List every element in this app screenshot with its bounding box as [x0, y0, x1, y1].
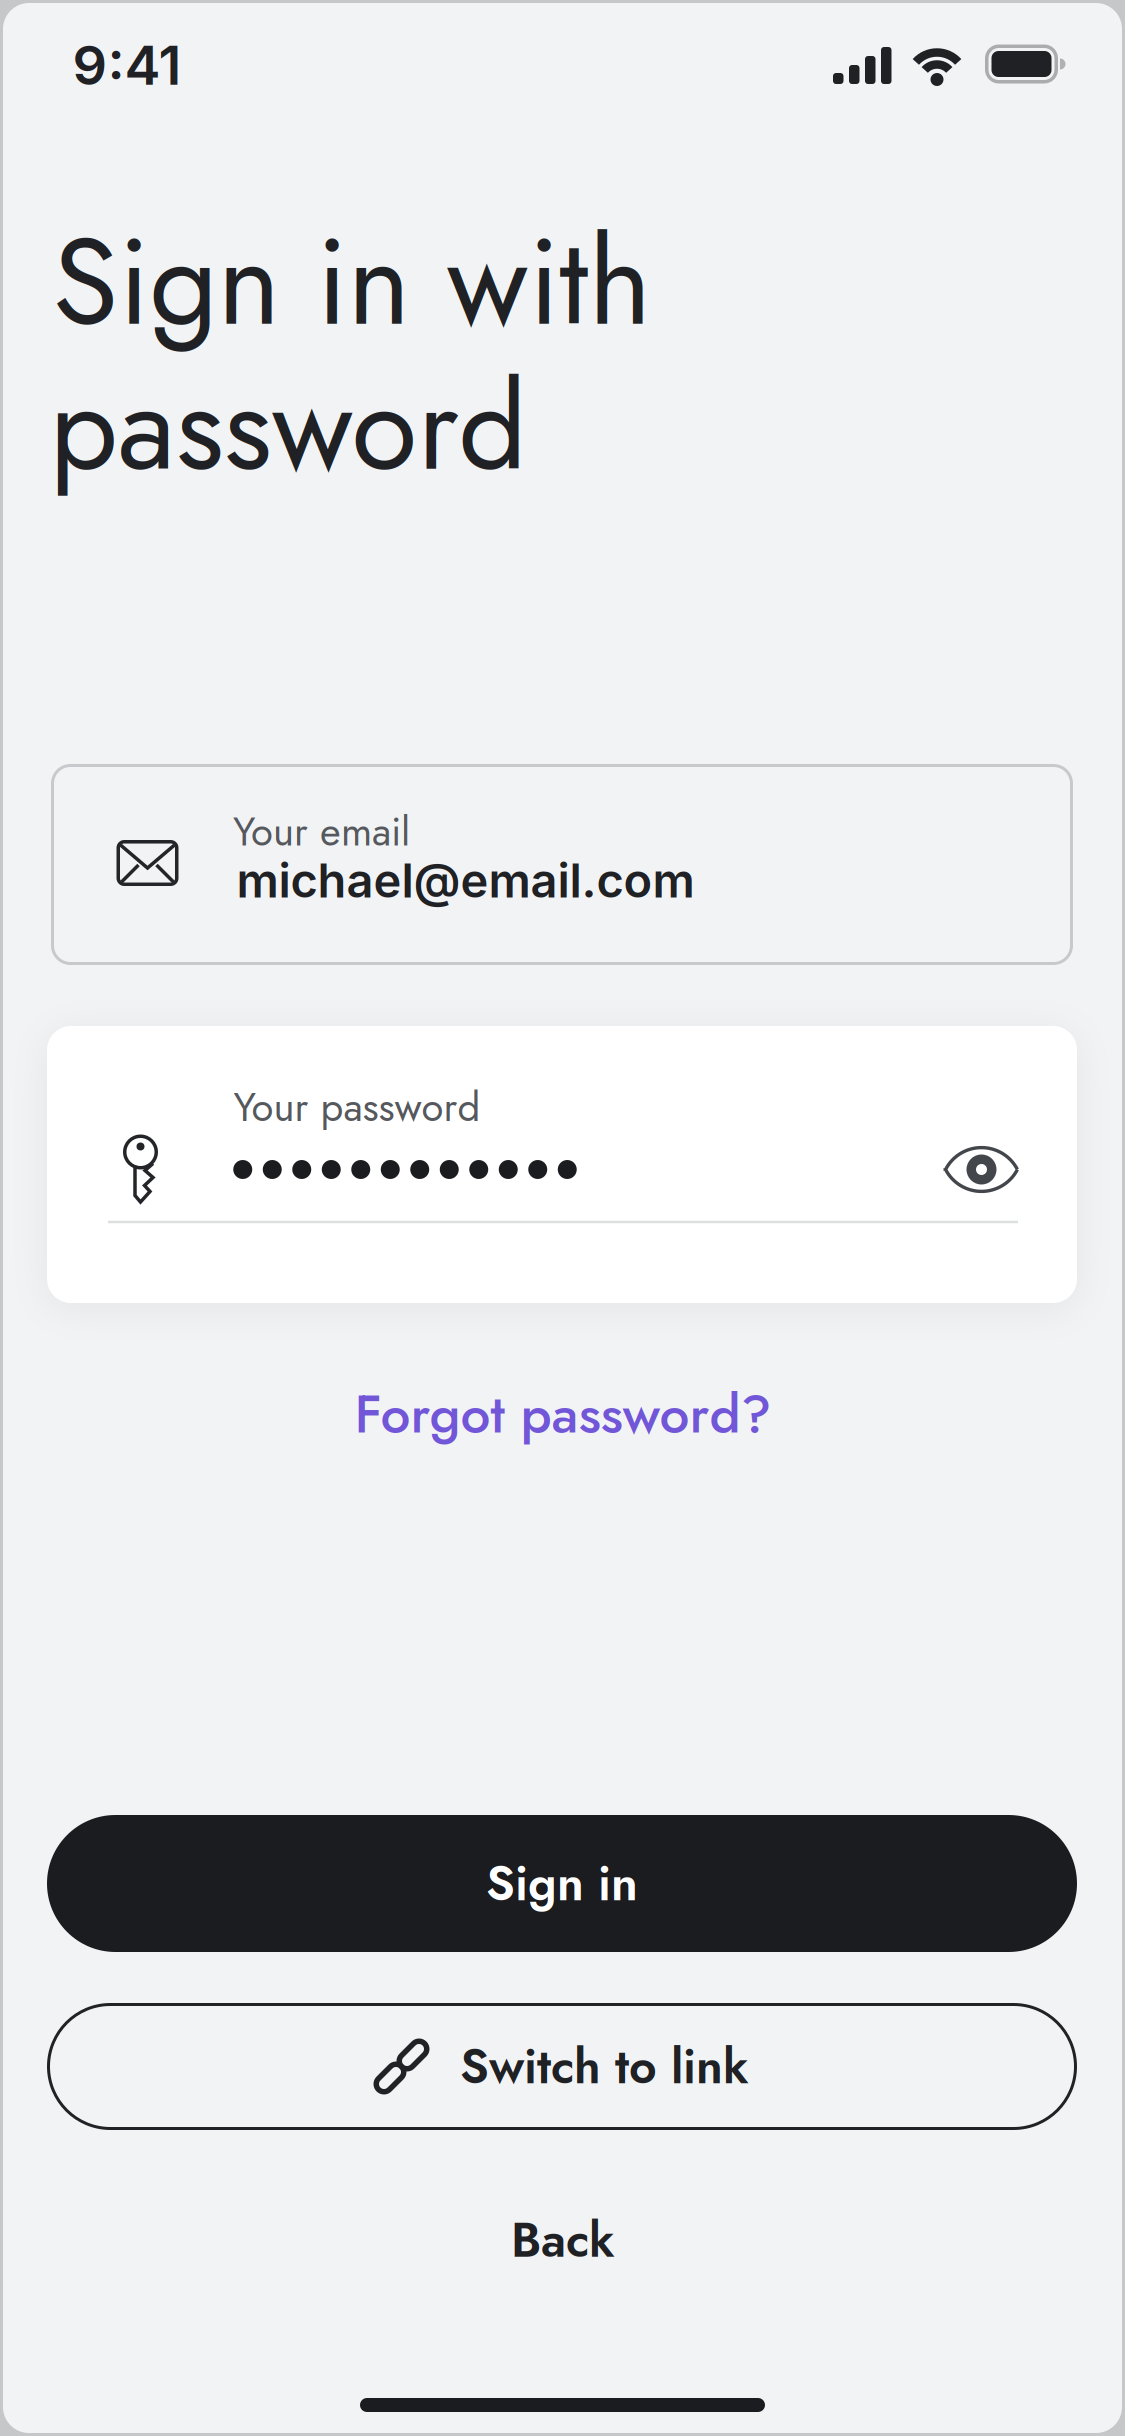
- button[interactable]: Back: [511, 2205, 615, 2275]
- staticText: password: [49, 340, 526, 514]
- staticText: Sign in: [486, 1849, 638, 1918]
- staticText: Switch to link: [460, 2032, 749, 2101]
- staticText: Your password: [233, 1078, 480, 1136]
- button[interactable]: Your email: [51, 764, 1073, 965]
- button[interactable]: Your password: [47, 1026, 1077, 1303]
- staticText: Sign in with: [52, 195, 651, 369]
- button[interactable]: Show password: [945, 1146, 1017, 1193]
- staticText: Back: [511, 2205, 615, 2275]
- staticText: michael@email.com: [236, 852, 694, 909]
- button[interactable]: Sign in: [47, 1815, 1077, 1952]
- staticText: 9:41: [72, 32, 181, 98]
- button[interactable]: Switch to link: [47, 2003, 1077, 2130]
- staticText: Forgot password?: [354, 1376, 771, 1452]
- staticText: Your email: [233, 803, 410, 860]
- button[interactable]: Forgot password?: [354, 1376, 771, 1452]
